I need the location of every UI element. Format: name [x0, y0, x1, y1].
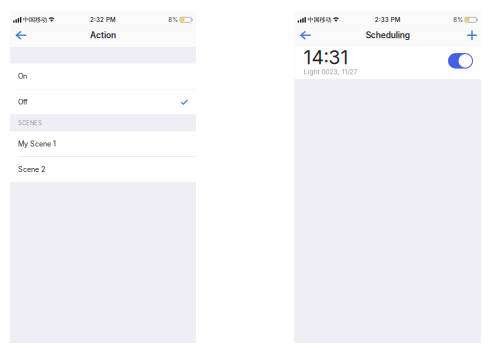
button[interactable]: Scene 2 — [10, 157, 196, 182]
button[interactable]: My Scene 1 — [10, 131, 196, 156]
staticText: Action — [90, 30, 116, 40]
button[interactable]: Add — [463, 29, 481, 41]
staticText: Off — [18, 98, 28, 106]
button[interactable]: Back — [294, 29, 316, 41]
staticText: 中国移动 — [23, 16, 47, 24]
staticText: On — [18, 72, 27, 80]
staticText: Scene 2 — [18, 165, 45, 174]
staticText: Light 0023, 11/27 — [303, 68, 357, 76]
staticText: 中国移动 — [307, 16, 331, 24]
staticText: My Scene 1 — [18, 140, 56, 148]
staticText: SCENES — [18, 119, 42, 127]
staticText: 2:33 PM — [375, 16, 401, 23]
staticText: 8% — [453, 16, 463, 23]
staticText: 2:32 PM — [90, 16, 116, 23]
button[interactable]: 14:31 — [294, 47, 481, 79]
staticText: 14:31 — [303, 46, 348, 69]
button[interactable]: Off — [10, 89, 196, 114]
button[interactable]: Back — [10, 29, 32, 41]
staticText: 8% — [168, 16, 178, 23]
staticText: Scheduling — [366, 30, 410, 40]
button[interactable]: On — [10, 63, 196, 89]
